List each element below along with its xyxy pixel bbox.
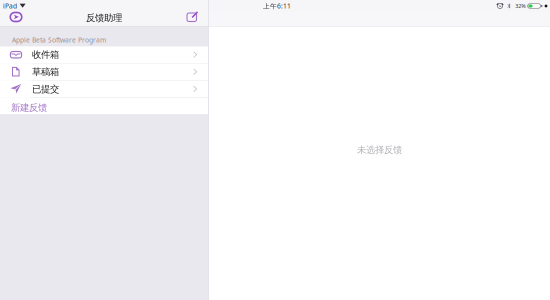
staticText: 反馈助理	[86, 12, 122, 24]
button[interactable]: Compose	[184, 12, 208, 26]
staticText: 收件箱	[32, 49, 59, 60]
staticText: 32%	[515, 2, 525, 10]
button[interactable]: 新建反馈	[0, 98, 208, 114]
staticText: 未选择反馈	[357, 144, 402, 156]
staticText: 已提交	[32, 83, 59, 95]
button[interactable]: Feedback Assistant	[0, 12, 26, 26]
staticText: 上午6:11	[263, 2, 291, 10]
button[interactable]: 收件箱	[0, 46, 208, 63]
button[interactable]: 草稿箱	[0, 63, 208, 80]
staticText: 新建反馈	[11, 102, 47, 113]
staticText: Apple Beta Software Program	[12, 35, 106, 44]
staticText: iPad	[3, 2, 17, 10]
staticText: 草稿箱	[32, 66, 59, 78]
button[interactable]: 已提交	[0, 81, 208, 97]
